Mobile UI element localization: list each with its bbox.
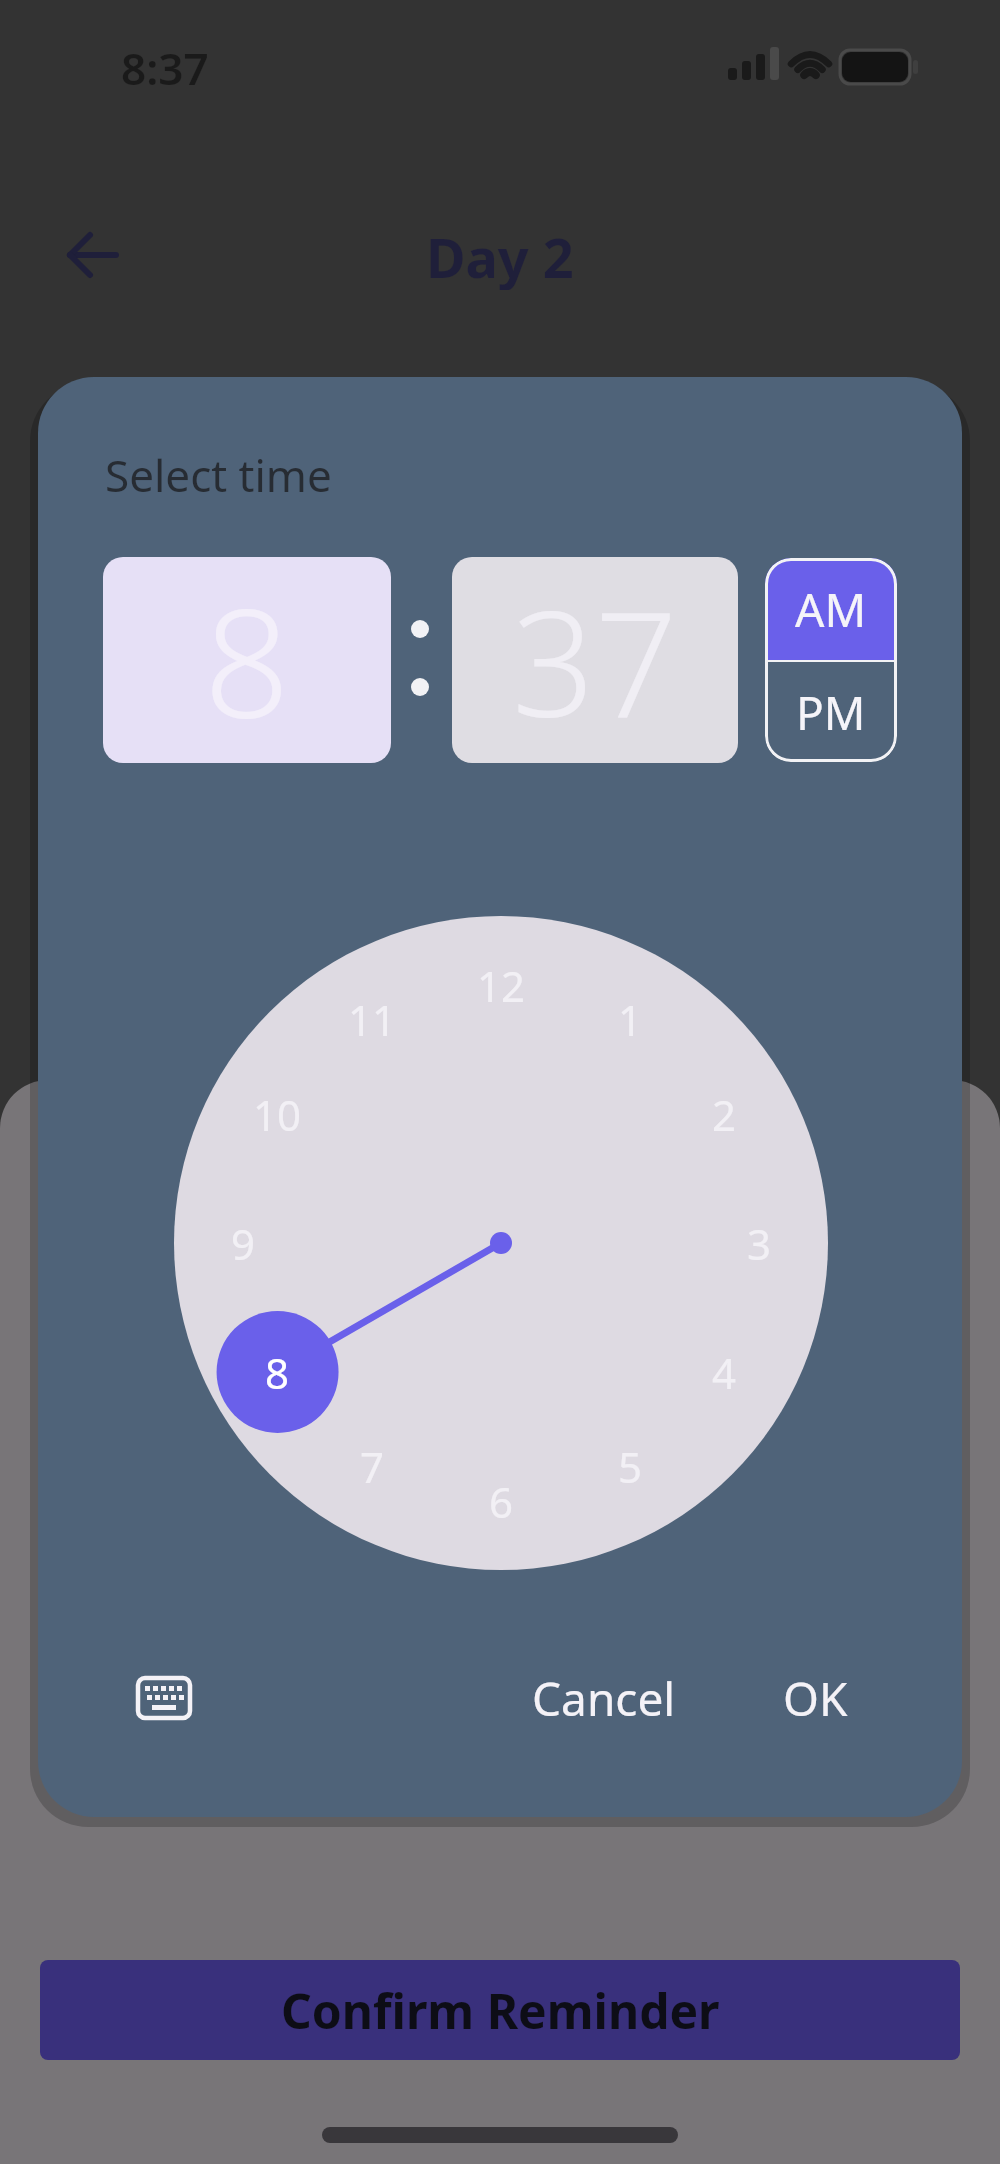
- staticText: PM: [796, 681, 866, 744]
- staticText: 6: [489, 1473, 514, 1530]
- staticText: 1: [618, 991, 643, 1048]
- button[interactable]: [126, 1660, 202, 1736]
- button[interactable]: 37: [452, 557, 738, 763]
- button[interactable]: AM: [765, 558, 897, 660]
- staticText: 8: [204, 558, 290, 762]
- staticText: OK: [783, 1667, 848, 1730]
- staticText: 8: [265, 1344, 290, 1401]
- staticText: Select time: [105, 445, 332, 505]
- button[interactable]: PM: [765, 662, 897, 762]
- staticText: 11: [348, 991, 397, 1048]
- button[interactable]: [60, 222, 126, 288]
- staticText: Day 2: [426, 220, 574, 290]
- button[interactable]: Cancel: [504, 1659, 704, 1737]
- button[interactable]: 8: [232, 1327, 322, 1417]
- staticText: 9: [231, 1215, 256, 1272]
- button[interactable]: Confirm Reminder: [40, 1960, 960, 2060]
- staticText: 5: [618, 1438, 643, 1495]
- staticText: 10: [253, 1086, 302, 1143]
- staticText: Cancel: [532, 1667, 676, 1730]
- staticText: Confirm Reminder: [281, 1978, 720, 2043]
- staticText: 12: [477, 957, 526, 1014]
- staticText: 4: [712, 1344, 737, 1401]
- staticText: AM: [795, 578, 867, 641]
- button[interactable]: OK: [745, 1659, 885, 1737]
- staticText: 3: [747, 1215, 772, 1272]
- staticText: 2: [712, 1086, 737, 1143]
- staticText: 8:37: [121, 38, 209, 94]
- staticText: 37: [512, 562, 678, 759]
- button[interactable]: 8: [103, 557, 391, 763]
- staticText: 7: [360, 1438, 385, 1495]
